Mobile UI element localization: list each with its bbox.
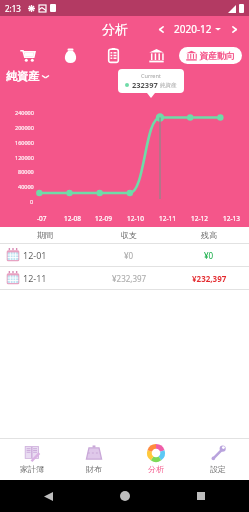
staticText: -07 — [37, 214, 47, 223]
staticText: 分析 — [102, 21, 128, 37]
staticText: 12-13 — [223, 214, 240, 223]
button[interactable]: Budget — [92, 42, 135, 68]
staticText: 12-09 — [95, 214, 112, 223]
staticText: 財布 — [86, 464, 102, 474]
button[interactable]: Next month — [223, 18, 245, 40]
staticText: 12-11 — [159, 214, 176, 223]
staticText: 160000 — [15, 139, 34, 146]
staticText: 12-11 — [23, 272, 47, 284]
staticText: 12-12 — [191, 214, 208, 223]
staticText: 家計簿 — [20, 464, 44, 474]
staticText: ¥232,397 — [112, 273, 147, 284]
button[interactable]: Previous month — [150, 18, 172, 40]
staticText: 12-01 — [23, 249, 47, 261]
staticText: ¥0 — [204, 250, 214, 261]
staticText: ¥232,397 — [192, 273, 227, 284]
staticText: 200000 — [15, 124, 34, 131]
staticText: 純資産 — [160, 82, 177, 89]
staticText: 240000 — [15, 109, 34, 116]
staticText: 残高 — [201, 230, 217, 240]
button[interactable]: Income — [49, 42, 92, 68]
staticText: Current — [141, 72, 161, 79]
button[interactable]: 設定 — [187, 438, 249, 480]
button[interactable]: 12-01 — [0, 244, 249, 266]
staticText: 期間 — [37, 230, 53, 240]
staticText: 分析 — [148, 464, 164, 474]
staticText: ¥0 — [124, 250, 134, 261]
staticText: 2:13 — [5, 3, 21, 14]
staticText: 40000 — [18, 183, 34, 190]
staticText: 232397 — [132, 80, 158, 90]
staticText: 資産動向 — [199, 50, 235, 61]
button[interactable]: Recents — [191, 486, 211, 506]
button[interactable]: 資産動向 — [179, 47, 242, 64]
button[interactable]: Home — [115, 486, 135, 506]
button[interactable]: 純資産 — [6, 69, 49, 83]
button[interactable]: 12-11 — [0, 267, 249, 289]
staticText: 設定 — [210, 464, 226, 474]
staticText: 純資産 — [6, 69, 39, 83]
staticText: 80000 — [18, 168, 34, 175]
button[interactable]: Spending — [6, 42, 49, 68]
button[interactable]: 分析 — [125, 438, 187, 480]
staticText: 120000 — [15, 154, 34, 161]
button[interactable]: Assets — [135, 42, 178, 68]
staticText: 0 — [30, 198, 34, 205]
staticText: 12-10 — [127, 214, 144, 223]
staticText: 収支 — [121, 230, 137, 240]
button[interactable]: 2020-12 — [172, 22, 223, 36]
staticText: 2020-12 — [174, 22, 212, 36]
button[interactable]: 家計簿 — [0, 438, 63, 480]
button[interactable]: 財布 — [63, 438, 125, 480]
button[interactable]: Back — [38, 486, 58, 506]
staticText: 12-08 — [64, 214, 81, 223]
